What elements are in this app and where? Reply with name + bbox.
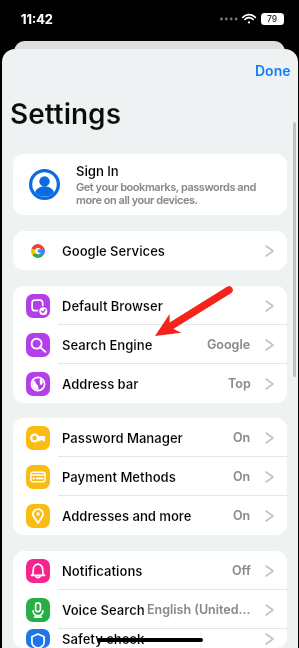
- button[interactable]: Default Browser: [13, 286, 287, 325]
- staticText: Settings: [10, 97, 122, 131]
- staticText: Safety check: [62, 631, 145, 647]
- button[interactable]: Voice Search: [13, 590, 287, 629]
- button[interactable]: Address bar: [13, 364, 287, 403]
- button[interactable]: Google Services: [13, 231, 287, 270]
- button[interactable]: Sign In: [13, 154, 287, 215]
- staticText: Get your bookmarks, passwords and more o…: [76, 180, 276, 206]
- staticText: On: [233, 469, 251, 484]
- button[interactable]: Payment Methods: [13, 457, 287, 496]
- staticText: On: [233, 508, 251, 523]
- staticText: Voice Search: [62, 602, 145, 618]
- button[interactable]: Password Manager: [13, 418, 287, 457]
- staticText: Address bar: [62, 376, 139, 392]
- staticText: Payment Methods: [62, 469, 176, 485]
- staticText: Default Browser: [62, 298, 163, 314]
- staticText: Done: [255, 62, 291, 79]
- button[interactable]: Notifications: [13, 551, 287, 590]
- staticText: Google: [207, 337, 251, 352]
- staticText: Notifications: [62, 563, 143, 579]
- button[interactable]: Done: [248, 58, 298, 83]
- button[interactable]: Safety check: [13, 629, 287, 648]
- staticText: 11:42: [21, 11, 53, 27]
- button[interactable]: Search Engine: [13, 325, 287, 364]
- staticText: On: [233, 430, 251, 445]
- button[interactable]: Addresses and more: [13, 496, 287, 535]
- staticText: 79: [267, 14, 278, 24]
- staticText: Sign In: [76, 163, 119, 179]
- staticText: Top: [228, 376, 251, 391]
- staticText: Password Manager: [62, 430, 183, 446]
- staticText: Addresses and more: [62, 508, 192, 524]
- staticText: Off: [232, 563, 251, 578]
- staticText: Google Services: [62, 243, 166, 259]
- staticText: Search Engine: [62, 337, 153, 353]
- staticText: English (United…: [147, 602, 251, 617]
